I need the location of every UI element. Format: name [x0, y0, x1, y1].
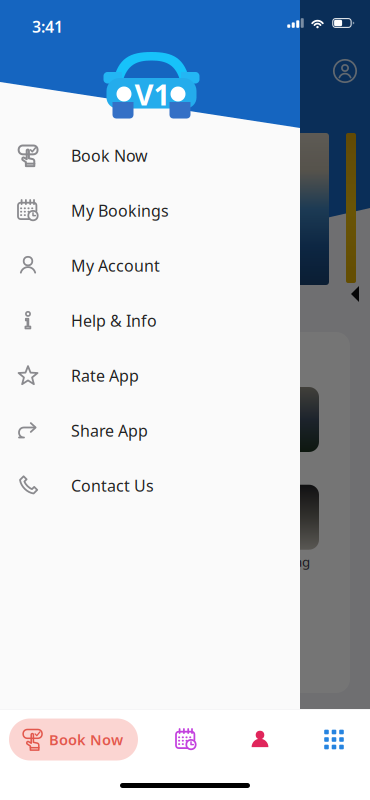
button[interactable]: Book Now: [9, 718, 138, 760]
button[interactable]: My Bookings: [160, 716, 212, 762]
staticText: V1: [134, 75, 170, 114]
button[interactable]: My Bookings: [0, 183, 300, 238]
staticText: Book Now: [71, 145, 148, 166]
staticText: Rate App: [71, 365, 139, 386]
staticText: 3:41: [32, 16, 63, 37]
button[interactable]: More: [308, 716, 360, 762]
staticText: My Bookings: [71, 200, 169, 221]
button[interactable]: My Account: [234, 716, 286, 762]
button[interactable]: Help & Info: [0, 293, 300, 348]
staticText: Share App: [71, 420, 148, 441]
staticText: Wedding: [255, 553, 310, 570]
button[interactable]: Contact Us: [0, 458, 300, 513]
staticText: Help & Info: [71, 310, 157, 331]
button[interactable]: Share App: [0, 403, 300, 458]
staticText: Contact Us: [71, 475, 154, 496]
button[interactable]: Profile: [323, 49, 367, 93]
staticText: My Account: [71, 255, 160, 276]
button[interactable]: Book Now: [0, 128, 300, 183]
button[interactable]: My Account: [0, 238, 300, 293]
staticText: Book Now: [49, 730, 123, 749]
button[interactable]: Rate App: [0, 348, 300, 403]
